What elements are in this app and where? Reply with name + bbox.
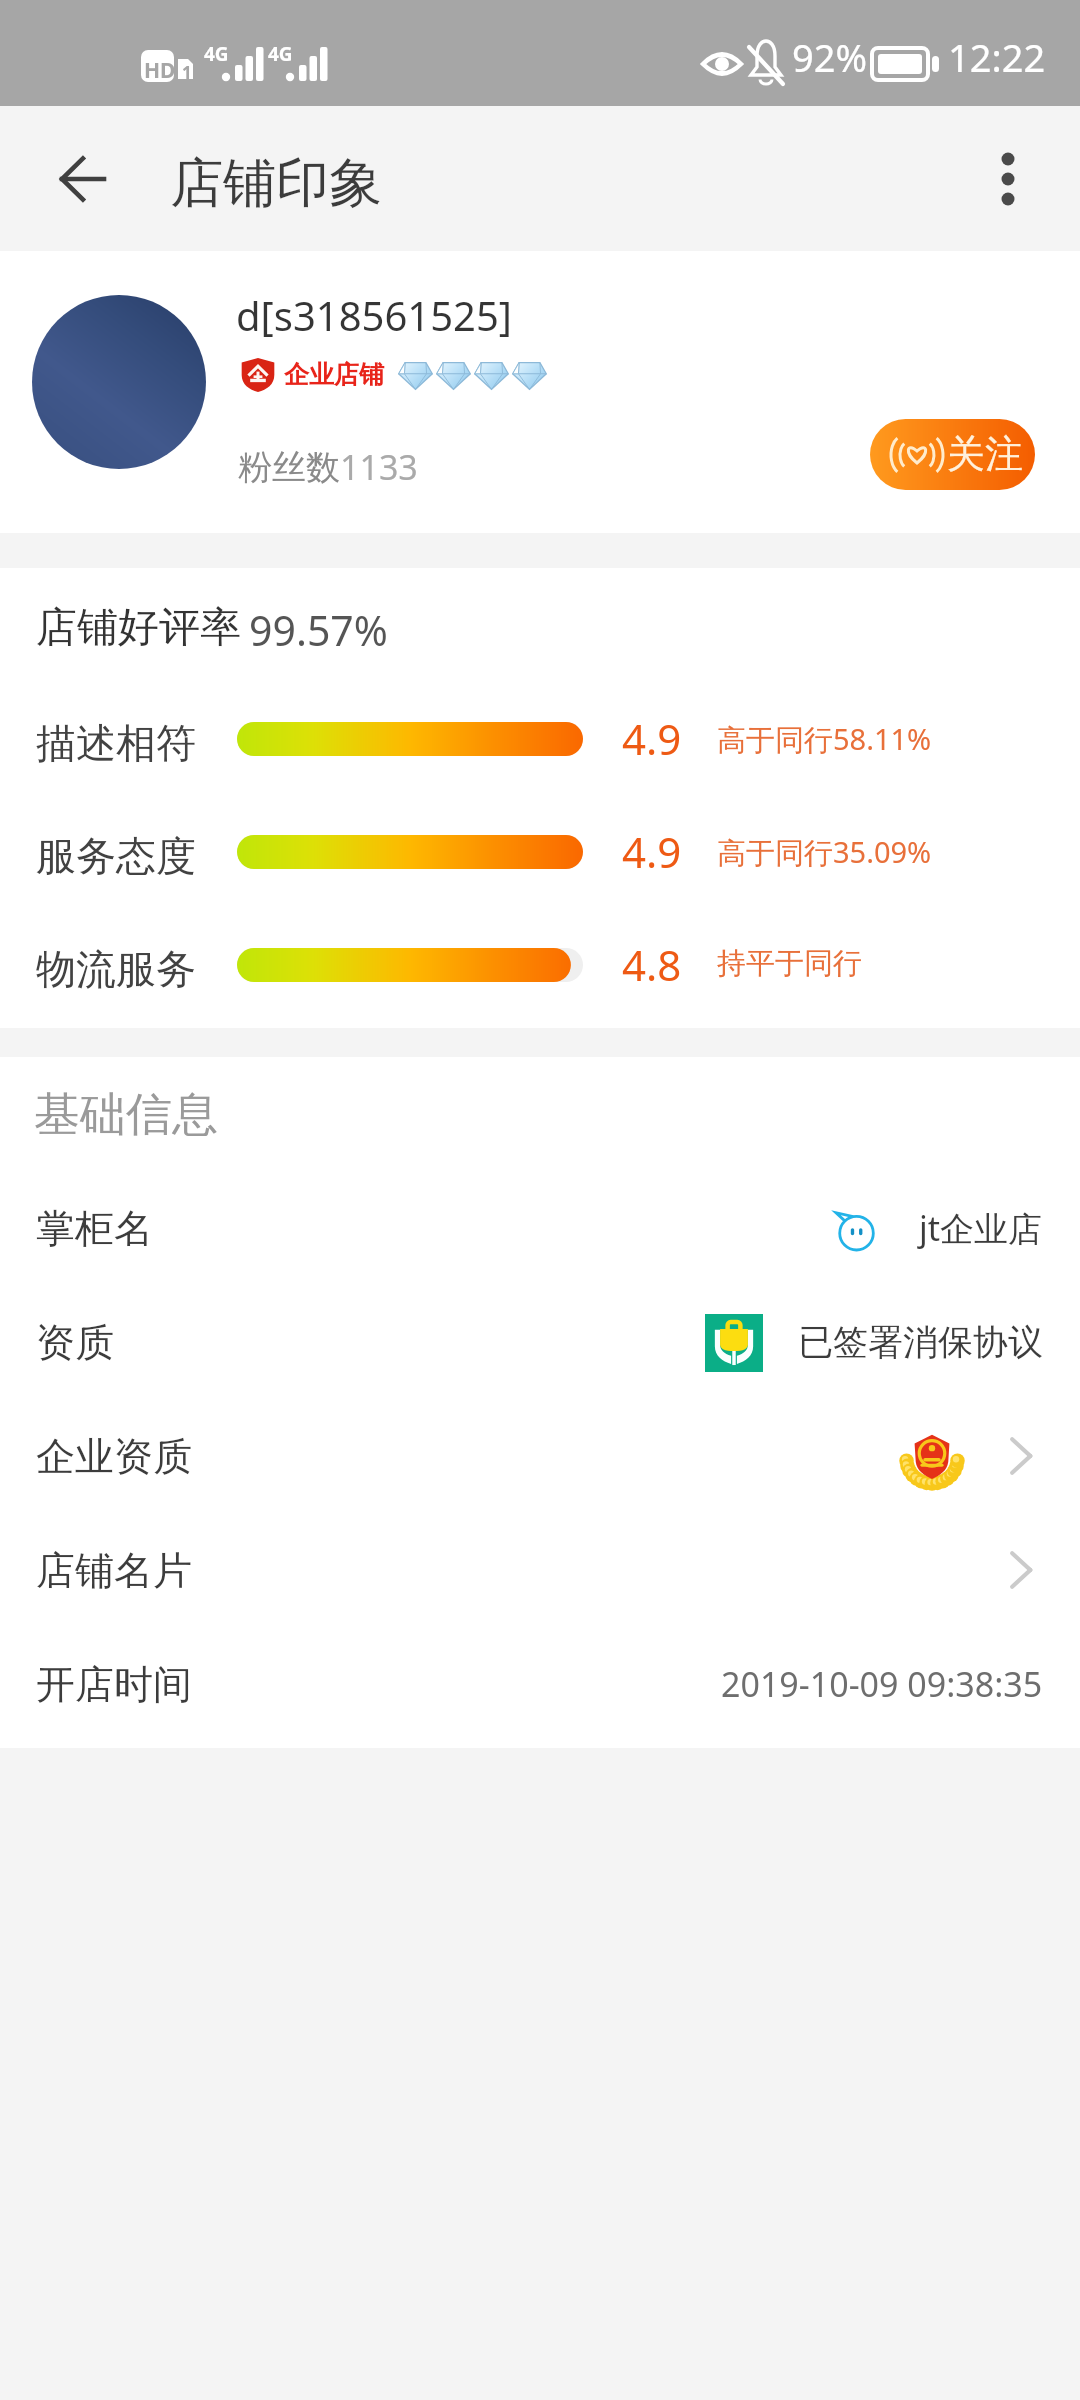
button[interactable]: 关注 (870, 419, 1035, 490)
staticText: 店铺好评率 (36, 602, 241, 654)
staticText: 4G (268, 41, 293, 67)
staticText: 企业资质 (36, 1432, 192, 1481)
button[interactable]: 资质 (0, 1285, 1080, 1399)
staticText: 4.9 (622, 710, 682, 767)
staticText: 高于同行35.09% (717, 832, 932, 872)
staticText: 1 (182, 61, 192, 84)
staticText: 开店时间 (36, 1660, 192, 1709)
button[interactable]: 店铺名片 (0, 1513, 1080, 1627)
staticText: 4G (204, 41, 229, 67)
staticText: jt企业店 (919, 1205, 1043, 1251)
staticText: 已签署消保协议 (798, 1320, 1043, 1364)
staticText: 粉丝数 (238, 446, 340, 489)
staticText: 基础信息 (34, 1086, 218, 1144)
button[interactable]: Shop avatar (32, 295, 206, 469)
staticText: 1133 (340, 444, 418, 490)
button[interactable]: 企业资质 (0, 1399, 1080, 1513)
staticText: HD (144, 56, 176, 85)
staticText: 店铺印象 (170, 150, 382, 217)
staticText: 关注 (947, 430, 1023, 478)
staticText: 99.57% (249, 602, 388, 658)
staticText: 4.9 (622, 823, 682, 880)
staticText: 资质 (36, 1318, 114, 1367)
staticText: 服务态度 (36, 831, 196, 881)
staticText: 2019-10-09 09:38:35 (721, 1661, 1043, 1707)
staticText: 企业店铺 (284, 359, 384, 390)
staticText: 4.8 (622, 936, 682, 993)
staticText: 描述相符 (36, 718, 196, 768)
button[interactable]: More options (956, 127, 1060, 231)
staticText: 高于同行58.11% (717, 719, 932, 759)
staticText: 物流服务 (36, 944, 196, 994)
staticText: 掌柜名 (36, 1204, 153, 1253)
staticText: 店铺名片 (36, 1546, 192, 1595)
button[interactable]: 开店时间 (0, 1627, 1080, 1741)
staticText: 92% (792, 31, 868, 83)
staticText: 持平于同行 (717, 945, 862, 982)
button[interactable]: 掌柜名 (0, 1171, 1080, 1285)
button[interactable]: Back (26, 123, 138, 235)
staticText: 12:22 (948, 31, 1046, 83)
staticText: d[s318561525] (236, 288, 512, 342)
